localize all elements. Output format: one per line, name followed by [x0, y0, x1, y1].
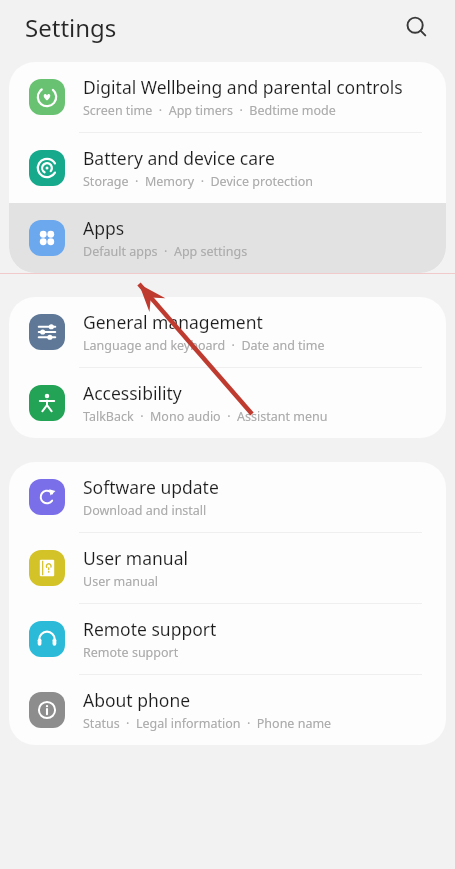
staticText: Language and keyboard · Date and time [83, 337, 325, 354]
button[interactable]: Remote support [9, 604, 446, 674]
button[interactable]: Battery and device care [9, 133, 446, 203]
button[interactable]: General management [9, 297, 446, 367]
staticText: Digital Wellbeing and parental controls [83, 75, 403, 99]
staticText: Download and install [83, 502, 207, 519]
staticText: TalkBack · Mono audio · Assistant menu [83, 408, 328, 425]
staticText: Default apps · App settings [83, 243, 248, 260]
staticText: About phone [83, 688, 191, 712]
staticText: Software update [83, 475, 219, 499]
staticText: General management [83, 310, 263, 334]
button[interactable]: Software update [9, 462, 446, 532]
staticText: User manual [83, 546, 188, 570]
button[interactable]: Apps [9, 203, 446, 273]
button[interactable]: User manual [9, 533, 446, 603]
staticText: Status · Legal information · Phone name [83, 715, 332, 732]
staticText: Battery and device care [83, 146, 275, 170]
staticText: User manual [83, 573, 158, 590]
button[interactable]: About phone [9, 675, 446, 745]
staticText: Remote support [83, 617, 217, 641]
button[interactable]: Search [395, 6, 437, 48]
staticText: Apps [83, 216, 125, 240]
staticText: Screen time · App timers · Bedtime mode [83, 102, 336, 119]
staticText: Storage · Memory · Device protection [83, 173, 314, 190]
button[interactable]: Digital Wellbeing and parental controls [9, 62, 446, 132]
staticText: Accessibility [83, 381, 182, 405]
staticText: Settings [25, 11, 117, 44]
staticText: Remote support [83, 644, 179, 661]
button[interactable]: Accessibility [9, 368, 446, 438]
